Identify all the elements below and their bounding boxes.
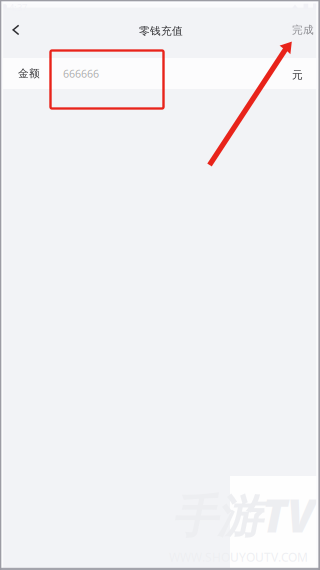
staticText: 4:37 bbox=[9, 1, 27, 14]
staticText: 完成 bbox=[292, 23, 314, 36]
staticText: 金额 bbox=[18, 67, 40, 80]
staticText: 元 bbox=[292, 68, 303, 81]
staticText: WWW.SHOUYOUTV.COM bbox=[169, 549, 308, 565]
staticText: 666666 bbox=[63, 66, 99, 81]
button[interactable]: 完成 bbox=[292, 13, 320, 47]
staticText: 手游TV bbox=[172, 485, 315, 545]
staticText: 零钱充值 bbox=[139, 24, 183, 37]
button[interactable]: Back bbox=[0, 13, 32, 47]
